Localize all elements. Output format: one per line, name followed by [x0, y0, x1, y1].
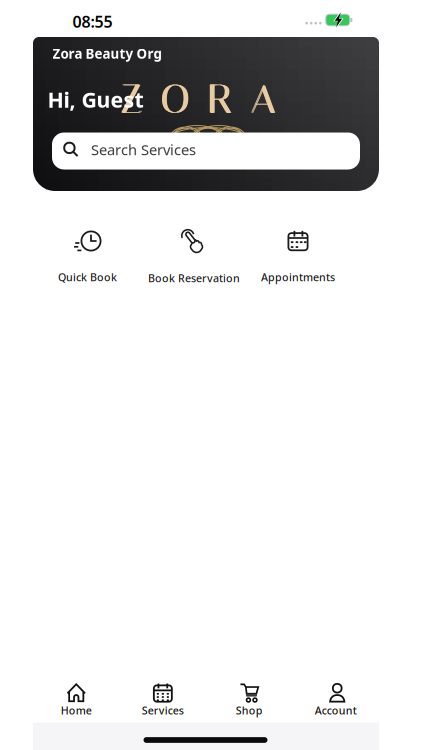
staticText: Appointments [261, 270, 335, 284]
button[interactable]: Shop [206, 683, 292, 717]
button[interactable]: Book Reservation [148, 229, 240, 285]
staticText: Book Reservation [148, 271, 240, 285]
staticText: Services [142, 703, 184, 717]
button[interactable]: Quick Book [58, 229, 117, 284]
staticText: ZORA [120, 75, 275, 122]
staticText: ZORA [121, 76, 276, 123]
button[interactable]: Account [292, 683, 379, 717]
button[interactable]: Appointments [261, 229, 335, 284]
staticText: ZORA [121, 76, 276, 123]
staticText: Home [61, 703, 92, 717]
staticText: Account [315, 703, 357, 717]
button[interactable]: Services [119, 683, 206, 717]
staticText: Quick Book [58, 270, 117, 284]
staticText: ZORA [120, 75, 275, 122]
staticText: Search Services [91, 140, 196, 159]
staticText: 08:55 [72, 11, 112, 32]
staticText: Zora Beauty Org [52, 45, 161, 62]
button[interactable]: Home [33, 683, 119, 717]
button[interactable]: Search Services [52, 132, 360, 169]
staticText: Shop [236, 703, 263, 717]
staticText: Hi, Guest [47, 85, 143, 114]
